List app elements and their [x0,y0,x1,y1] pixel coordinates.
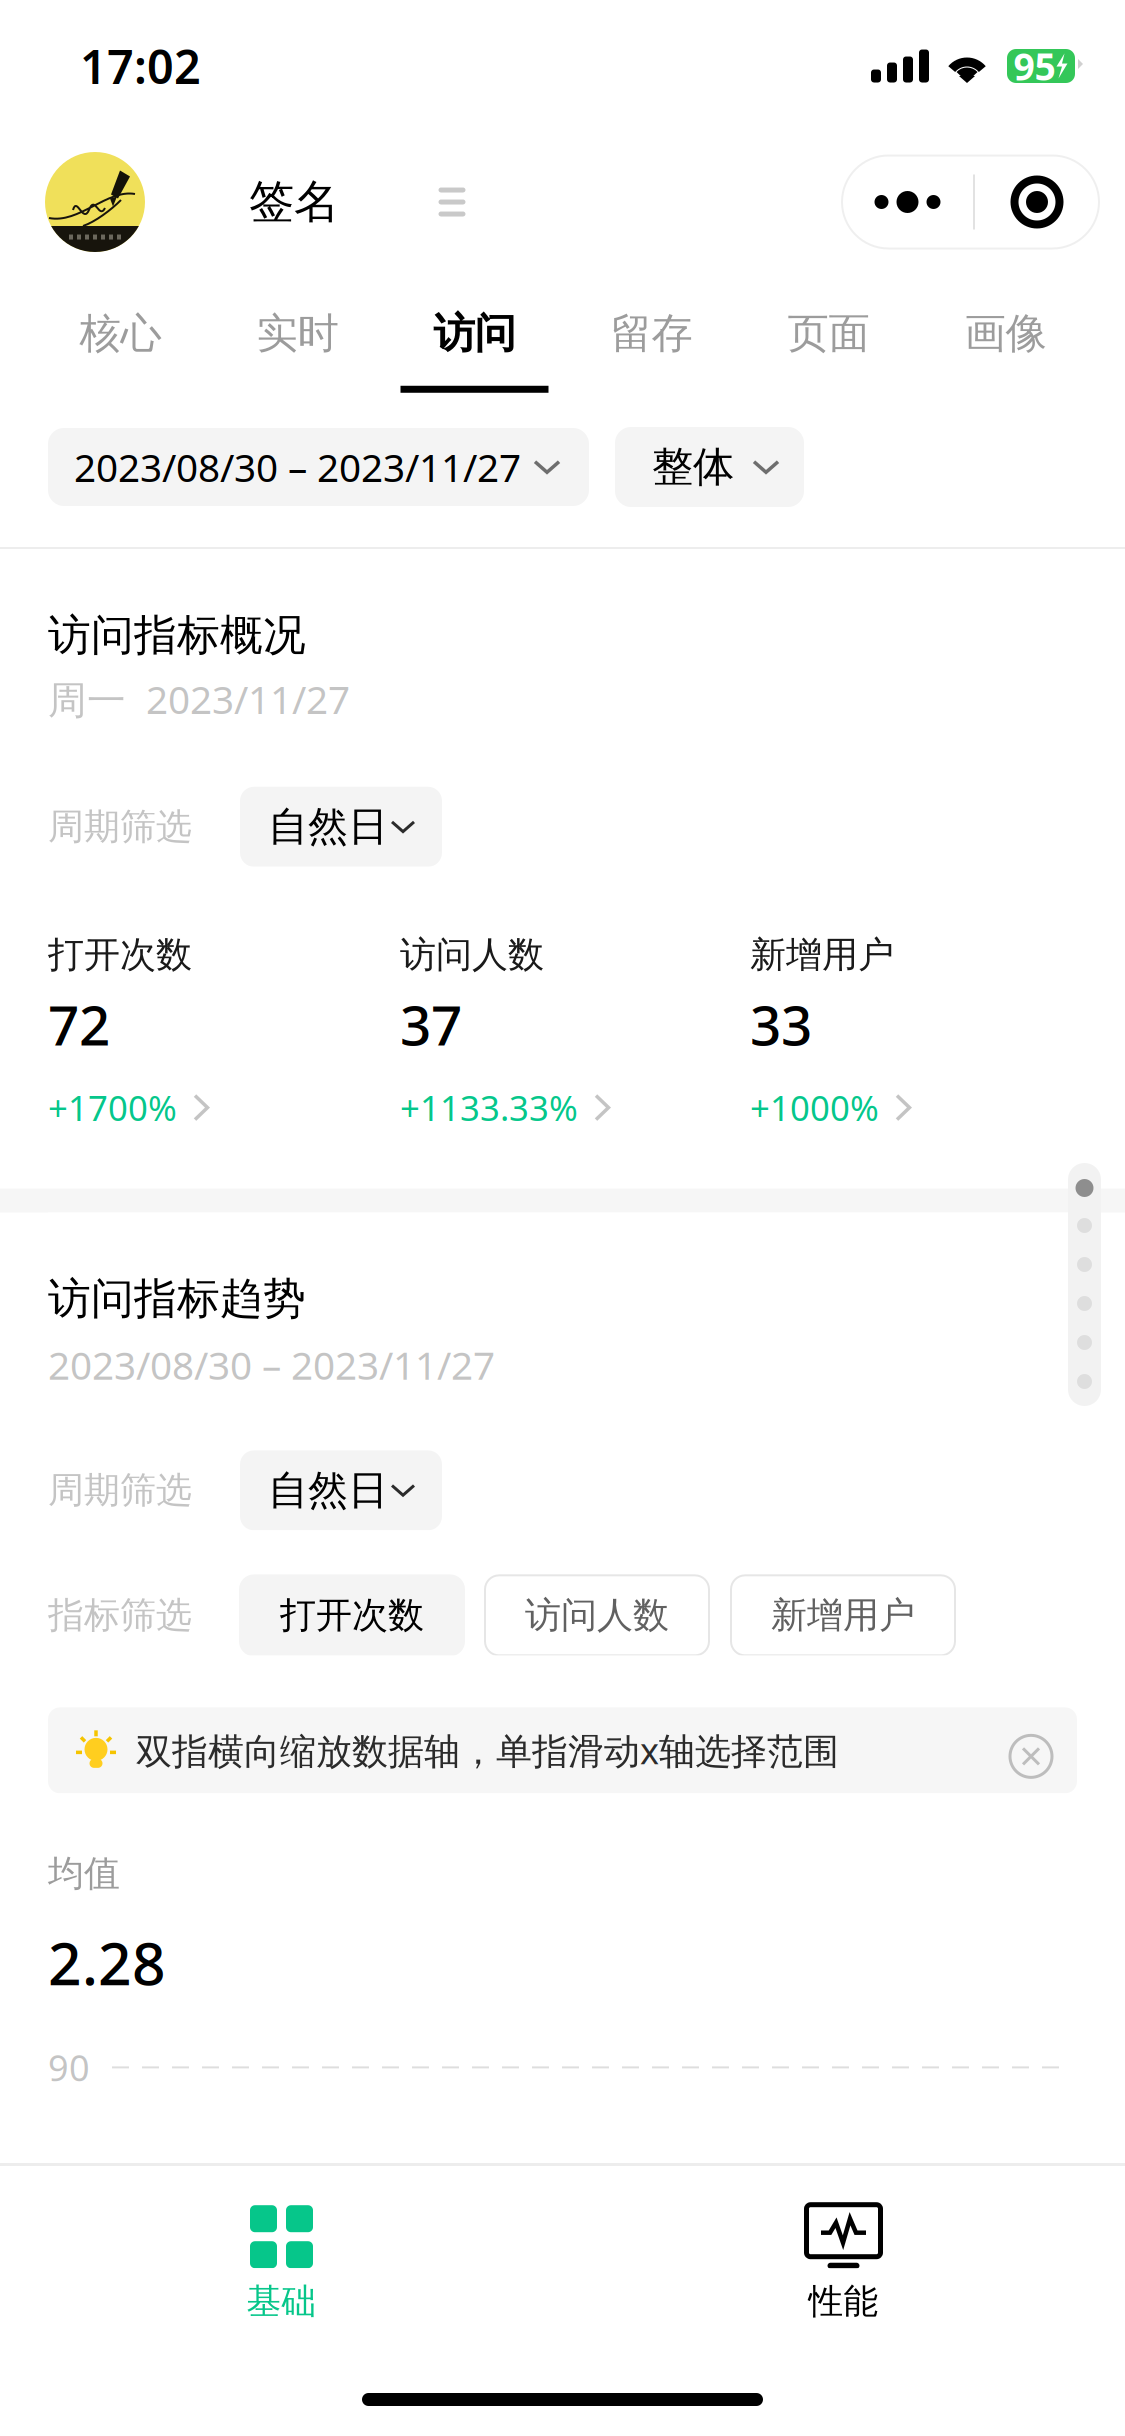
staticText: 访问指标趋势 [48,1273,306,1325]
staticText: 17:02 [80,35,201,97]
button[interactable]: 自然日 [240,1450,442,1530]
button[interactable]: 整体 [615,427,804,507]
button[interactable]: 页面 [740,272,917,412]
staticText: 均值 [48,1851,120,1896]
staticText: 基础 [246,2280,316,2323]
staticText: 打开次数 [280,1593,424,1637]
staticText: 新增用户 [771,1593,915,1637]
staticText: 33 [750,988,812,1061]
button[interactable]: 2023/08/30 – 2023/11/27 [48,428,589,506]
staticText: +1700% [48,1085,177,1131]
staticText: 打开次数 [48,933,192,977]
staticText: 自然日 [268,1466,388,1515]
staticText: 整体 [652,442,734,492]
staticText: 新增用户 [750,933,894,977]
button[interactable]: 访问 [386,272,563,412]
staticText: 周一 2023/11/27 [48,673,350,725]
button[interactable]: More options [842,155,973,248]
staticText: 性能 [808,2280,878,2323]
button[interactable]: +1700% [48,1085,207,1131]
button[interactable]: 自然日 [240,787,442,867]
button[interactable]: 新增用户 [731,1575,955,1655]
staticText: 周期筛选 [48,805,192,849]
staticText: 实时 [256,308,338,359]
staticText: 页面 [787,308,869,359]
staticText: 访问指标概况 [48,609,306,661]
button[interactable]: 基础 [0,2199,562,2329]
staticText: 双指横向缩放数据轴，单指滑动x轴选择范围 [136,1726,839,1774]
staticText: 2.28 [48,1924,166,2001]
button[interactable]: 打开次数 [240,1575,464,1655]
staticText: 访问 [433,308,515,359]
button[interactable]: 性能 [562,2199,1124,2329]
staticText: 签名 [249,174,339,230]
button[interactable]: +1000% [750,1085,909,1131]
staticText: 留存 [610,308,692,359]
staticText: 2023/08/30 – 2023/11/27 [74,441,521,493]
button[interactable]: 留存 [563,272,740,412]
staticText: 指标筛选 [48,1593,192,1637]
button[interactable]: Close mini program [975,155,1099,248]
staticText: 访问人数 [525,1593,669,1637]
staticText: 72 [48,988,110,1061]
staticText: 2023/08/30 – 2023/11/27 [48,1339,495,1390]
staticText: +1133.33% [400,1085,578,1131]
staticText: 访问人数 [400,933,544,977]
staticText: 37 [400,988,462,1061]
button[interactable]: Dismiss tip [999,1718,1063,1782]
button[interactable]: +1133.33% [400,1085,608,1131]
staticText: 周期筛选 [48,1468,192,1512]
button[interactable]: Menu [427,177,477,227]
staticText: 自然日 [268,802,388,851]
button[interactable]: 访问人数 [485,1575,709,1655]
button[interactable]: 实时 [209,272,386,412]
staticText: 95 [1013,41,1055,91]
button[interactable]: 画像 [917,272,1094,412]
staticText: 画像 [964,308,1046,359]
staticText: 90 [48,2043,90,2091]
staticText: +1000% [750,1085,879,1131]
button[interactable]: 核心 [32,272,209,412]
staticText: 核心 [79,308,161,359]
